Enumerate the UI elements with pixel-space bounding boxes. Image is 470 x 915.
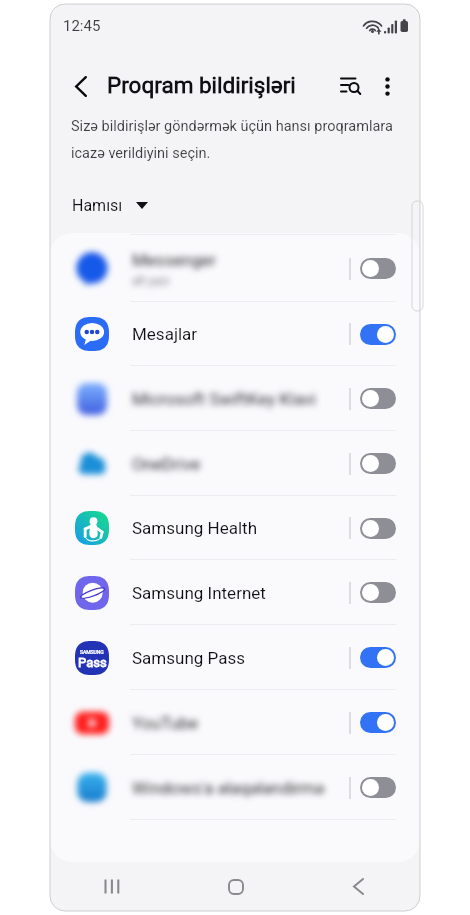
staticText: Microsoft SwiftKey Klavi	[132, 389, 316, 409]
button[interactable]: Back	[65, 70, 97, 102]
button[interactable]: Maps	[50, 233, 420, 235]
button[interactable]: Off	[360, 258, 396, 279]
staticText: Sizə bildirişlər göndərmək üçün hansı pr…	[71, 118, 405, 162]
button[interactable]: Messenger	[50, 235, 420, 302]
staticText: SAMSUNG	[80, 649, 104, 655]
button[interactable]: Off	[360, 453, 396, 474]
button[interactable]: Microsoft SwiftKey Klavi	[50, 366, 420, 431]
button[interactable]: On	[360, 324, 396, 345]
button[interactable]: Recent apps	[50, 862, 174, 911]
button[interactable]: Samsung Health	[50, 496, 420, 560]
button[interactable]: On	[360, 712, 396, 733]
staticText: Samsung Health	[132, 518, 257, 538]
staticText: Pass	[78, 655, 107, 670]
staticText: 12:45	[63, 17, 101, 35]
staticText: Proqram bildirişləri	[107, 72, 296, 98]
button[interactable]: YouTube	[50, 690, 420, 755]
button[interactable]: Back	[297, 862, 420, 911]
button[interactable]: Off	[360, 518, 396, 539]
staticText: Hamısı	[72, 196, 123, 215]
button[interactable]: Hamısı	[64, 188, 156, 222]
button[interactable]: Samsung Internet	[50, 560, 420, 625]
button[interactable]: SAMSUNG	[50, 625, 420, 690]
staticText: Samsung Pass	[132, 648, 245, 668]
staticText: OneDrive	[132, 454, 201, 474]
staticText: Windows'a əlaqələndirmə	[132, 778, 325, 798]
staticText: Messenger	[132, 250, 217, 270]
button[interactable]: On	[360, 647, 396, 668]
button[interactable]: Off	[360, 582, 396, 603]
staticText: Samsung Internet	[132, 583, 266, 603]
button[interactable]: OneDrive	[50, 431, 420, 496]
button[interactable]: Windows'a əlaqələndirmə	[50, 755, 420, 820]
button[interactable]: Off	[360, 777, 396, 798]
button[interactable]: Search	[333, 69, 369, 105]
staticText: YouTube	[132, 713, 199, 733]
staticText: alt yazı	[132, 274, 170, 288]
button[interactable]: Home	[174, 862, 297, 911]
button[interactable]: Mesajlar	[50, 302, 420, 366]
button[interactable]: More options	[369, 68, 405, 104]
staticText: Mesajlar	[132, 324, 198, 344]
button[interactable]: Off	[360, 388, 396, 409]
